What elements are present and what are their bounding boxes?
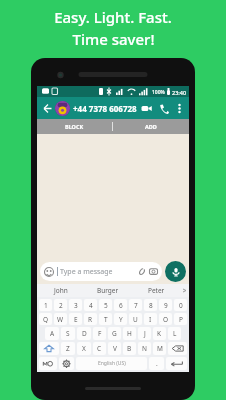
button[interactable]: 1 [39,299,52,311]
button[interactable]: 4 [84,299,97,311]
staticText: BLOCK [65,123,84,130]
staticText: L [173,329,177,338]
staticText: . [156,359,158,368]
button[interactable]: Enter [166,357,187,370]
button[interactable]: I [144,313,157,325]
button[interactable]: L [168,327,181,340]
button[interactable]: 6 [114,299,127,311]
staticText: Peter [148,286,165,295]
button[interactable]: Y [114,313,127,325]
staticText: +44 7378 606728 [73,103,137,114]
staticText: U [133,315,138,324]
button[interactable]: R [84,313,97,325]
staticText: G [112,329,117,338]
staticText: 2 [59,301,63,310]
button[interactable]: U [129,313,142,325]
button[interactable]: S [61,327,75,340]
staticText: X [82,344,86,353]
staticText: I [149,315,152,324]
button[interactable]: John [37,284,84,297]
button[interactable]: Settings [59,357,74,370]
button[interactable]: 9 [159,299,172,311]
staticText: B [127,344,132,353]
button[interactable]: D [77,327,91,340]
staticText: 0 [179,301,183,310]
button[interactable]: BLOCK [37,119,112,134]
button[interactable]: M [153,342,166,355]
button[interactable]: Record voice message [165,261,186,282]
button[interactable]: Back [40,101,54,115]
staticText: 6 [119,301,123,310]
staticText: F [98,329,102,338]
staticText: Easy. Light. Fast. [54,7,172,27]
button[interactable]: C [93,342,106,355]
button[interactable]: H [123,327,136,340]
button[interactable]: G [108,327,121,340]
staticText: English (US) [98,360,126,367]
staticText: 5 [104,301,108,310]
button[interactable]: English (US) [76,357,147,370]
staticText: N [142,344,147,353]
button[interactable]: . [149,357,164,370]
button[interactable]: N [138,342,151,355]
button[interactable]: 7 [129,299,142,311]
button[interactable]: Burger [84,284,132,297]
button[interactable]: O [159,313,172,325]
button[interactable]: K [153,327,166,340]
button[interactable]: J [138,327,151,340]
button[interactable]: W [54,313,67,325]
button[interactable]: Call [156,101,171,116]
button[interactable]: 2 [54,299,67,311]
button[interactable]: Peter [132,284,180,297]
button[interactable]: Type a message [40,262,162,281]
button[interactable]: Emoji and language [39,357,57,370]
staticText: Type a message [60,267,113,277]
button[interactable]: Z [61,342,75,355]
staticText: E [74,315,78,324]
staticText: W [57,315,64,324]
button[interactable]: F [93,327,106,340]
staticText: P [179,315,183,324]
button[interactable]: P [174,313,187,325]
staticText: Z [66,344,70,353]
staticText: K [157,329,162,338]
button[interactable]: 8 [144,299,157,311]
staticText: V [113,344,117,353]
button[interactable]: Q [39,313,52,325]
button[interactable]: 0 [174,299,187,311]
button[interactable]: Shift [39,342,59,355]
button[interactable]: ADD [113,119,189,134]
staticText: J [144,329,146,338]
staticText: M [157,344,163,353]
staticText: S [66,329,70,338]
staticText: 9 [164,301,168,310]
button[interactable]: V [108,342,121,355]
button[interactable]: More suggestions [180,284,189,297]
staticText: C [97,344,102,353]
button[interactable]: T [99,313,112,325]
staticText: 23:40 [172,89,187,96]
button[interactable]: B [123,342,136,355]
staticText: 8 [149,301,153,310]
staticText: O [163,315,169,324]
button[interactable]: More options [173,102,186,115]
staticText: Time saver! [72,29,155,49]
button[interactable]: 5 [99,299,112,311]
staticText: T [104,315,108,324]
staticText: 3 [74,301,78,310]
staticText: John [54,286,68,295]
staticText: A [50,329,55,338]
button[interactable]: E [69,313,82,325]
staticText: Y [119,315,123,324]
button[interactable]: A [45,327,59,340]
staticText: 100% [152,89,165,96]
button[interactable]: 3 [69,299,82,311]
staticText: 7 [134,301,138,310]
button[interactable]: Backspace [168,342,187,355]
button[interactable]: X [77,342,91,355]
staticText: D [82,329,87,338]
button[interactable]: Contact photo [55,101,70,116]
button[interactable]: Video call [139,101,154,116]
staticText: 1 [44,301,48,310]
staticText: ADD [145,123,157,130]
